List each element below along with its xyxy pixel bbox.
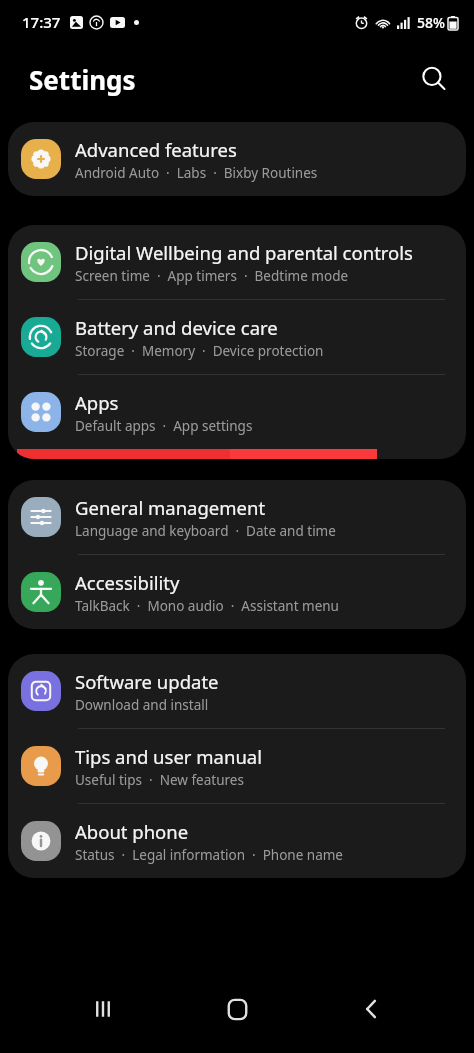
staticText: Language and keyboard · Date and time (75, 522, 336, 540)
button[interactable]: Apps (8, 375, 466, 449)
staticText: TalkBack · Mono audio · Assistant menu (75, 597, 339, 615)
button[interactable]: Home (205, 977, 269, 1041)
staticText: Advanced features (75, 137, 237, 162)
staticText: Useful tips · New features (75, 771, 244, 789)
staticText: Accessibility (75, 570, 180, 595)
staticText: Storage · Memory · Device protection (75, 342, 324, 360)
staticText: Tips and user manual (75, 744, 262, 769)
button[interactable]: Battery and device care (8, 300, 466, 374)
staticText: Android Auto · Labs · Bixby Routines (75, 164, 318, 182)
button[interactable]: Recent apps (71, 977, 135, 1041)
staticText: Battery and device care (75, 315, 278, 340)
staticText: Digital Wellbeing and parental controls (75, 240, 413, 265)
button[interactable]: Advanced features (8, 122, 466, 196)
staticText: Screen time · App timers · Bedtime mode (75, 267, 349, 285)
staticText: 17:37 (22, 12, 61, 32)
button[interactable]: Search (412, 57, 456, 101)
staticText: Settings (29, 62, 136, 97)
staticText: About phone (75, 819, 189, 844)
button[interactable]: Back (340, 977, 404, 1041)
button[interactable]: Digital Wellbeing and parental controls (8, 225, 466, 299)
staticText: Download and install (75, 696, 209, 714)
button[interactable]: General management (8, 480, 466, 554)
staticText: 58% (417, 13, 445, 32)
staticText: Software update (75, 669, 219, 694)
staticText: General management (75, 495, 266, 520)
button[interactable]: About phone (8, 804, 466, 878)
staticText: Status · Legal information · Phone name (75, 846, 343, 864)
staticText: Apps (75, 390, 119, 415)
button[interactable]: Accessibility (8, 555, 466, 629)
staticText: Default apps · App settings (75, 417, 253, 435)
button[interactable]: Tips and user manual (8, 729, 466, 803)
button[interactable]: Software update (8, 654, 466, 728)
